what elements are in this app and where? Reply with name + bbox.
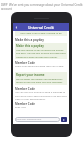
button[interactable]: Send [61, 117, 67, 122]
staticText: 9283 1827 [15, 106, 27, 109]
button[interactable]: Make this a payday [16, 44, 66, 58]
staticText: Member Code [15, 87, 36, 91]
button[interactable]: Report your income [16, 73, 66, 84]
staticText: Member Code [15, 61, 36, 65]
staticText: Tell us about the money you received thi… [16, 77, 66, 84]
staticText: You can use your journal to send a messa… [15, 91, 67, 100]
button[interactable]: Back [13, 23, 69, 31]
staticText: Type your message here [16, 118, 42, 121]
staticText: Check your details and keep them up to d… [15, 65, 64, 68]
staticText: Use this service to tell us about the mo… [16, 48, 66, 58]
button[interactable]: Back [13, 23, 19, 31]
staticText: DWP We've sent you a message about your … [1, 3, 84, 11]
staticText: Your claim is up to date. Nothing to do. [20, 32, 63, 35]
button[interactable]: Type your message here [16, 117, 59, 122]
staticText: Member Code [15, 102, 36, 106]
staticText: Make this a payday [16, 44, 44, 48]
staticText: Report your income [16, 73, 45, 77]
staticText: Make this a payday [15, 38, 44, 42]
button[interactable]: Your claim is up to date. Nothing to do. [15, 31, 67, 36]
staticText: Universal Credit [28, 25, 54, 30]
